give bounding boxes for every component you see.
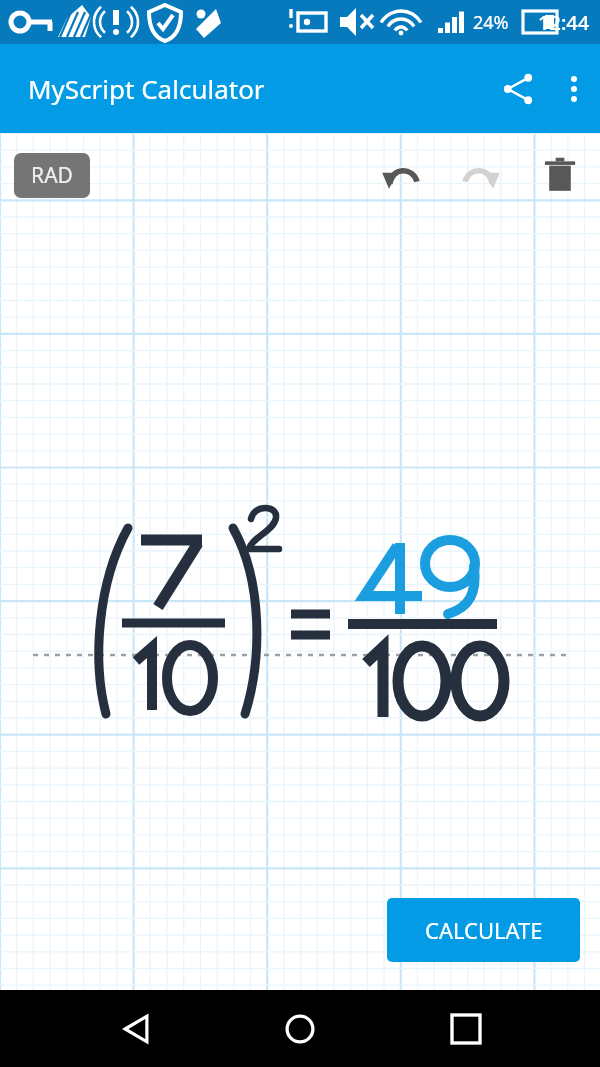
staticText: MyScript Calculator: [28, 71, 265, 106]
staticText: 12:44: [538, 9, 590, 36]
button[interactable]: Share: [488, 59, 548, 119]
button[interactable]: Delete: [532, 147, 588, 203]
button[interactable]: Redo: [452, 147, 510, 205]
button[interactable]: More options: [548, 63, 600, 115]
staticText: CALCULATE: [425, 915, 543, 945]
button[interactable]: Recents: [438, 990, 494, 1067]
button[interactable]: Home: [265, 994, 335, 1064]
button[interactable]: Back: [108, 990, 164, 1067]
staticText: 24%: [473, 10, 509, 35]
button[interactable]: CALCULATE: [387, 898, 580, 962]
button[interactable]: RAD: [14, 153, 90, 198]
staticText: RAD: [31, 161, 73, 190]
button[interactable]: Undo: [372, 147, 430, 205]
